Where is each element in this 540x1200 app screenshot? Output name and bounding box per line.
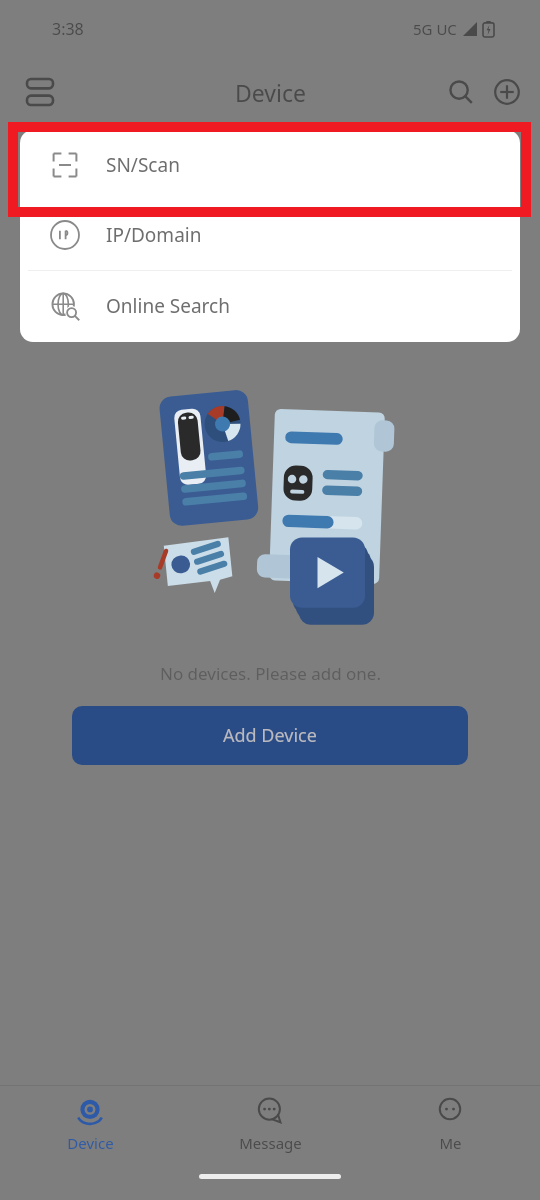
staticText: Me [439,1133,462,1153]
staticText: Device [67,1133,114,1153]
button[interactable]: List view [16,68,64,116]
button[interactable]: Device [0,1086,180,1162]
staticText: Device [235,77,306,108]
staticText: Add Device [223,723,317,748]
staticText: No devices. Please add one. [160,662,381,685]
staticText: Online Search [106,293,230,319]
button[interactable]: IP/Domain [20,200,520,270]
button[interactable]: Search [438,69,484,115]
button[interactable]: SN/Scan [20,130,520,200]
button[interactable]: Message [180,1086,360,1162]
staticText: 3:38 [52,18,84,40]
button[interactable]: Add Device [72,706,468,765]
button[interactable]: Add [484,69,530,115]
staticText: SN/Scan [106,152,180,178]
staticText: 5G UC [413,19,457,39]
button[interactable]: Me [360,1086,540,1162]
staticText: IP/Domain [106,222,202,248]
button[interactable]: Online Search [20,271,520,341]
staticText: Message [239,1133,302,1153]
